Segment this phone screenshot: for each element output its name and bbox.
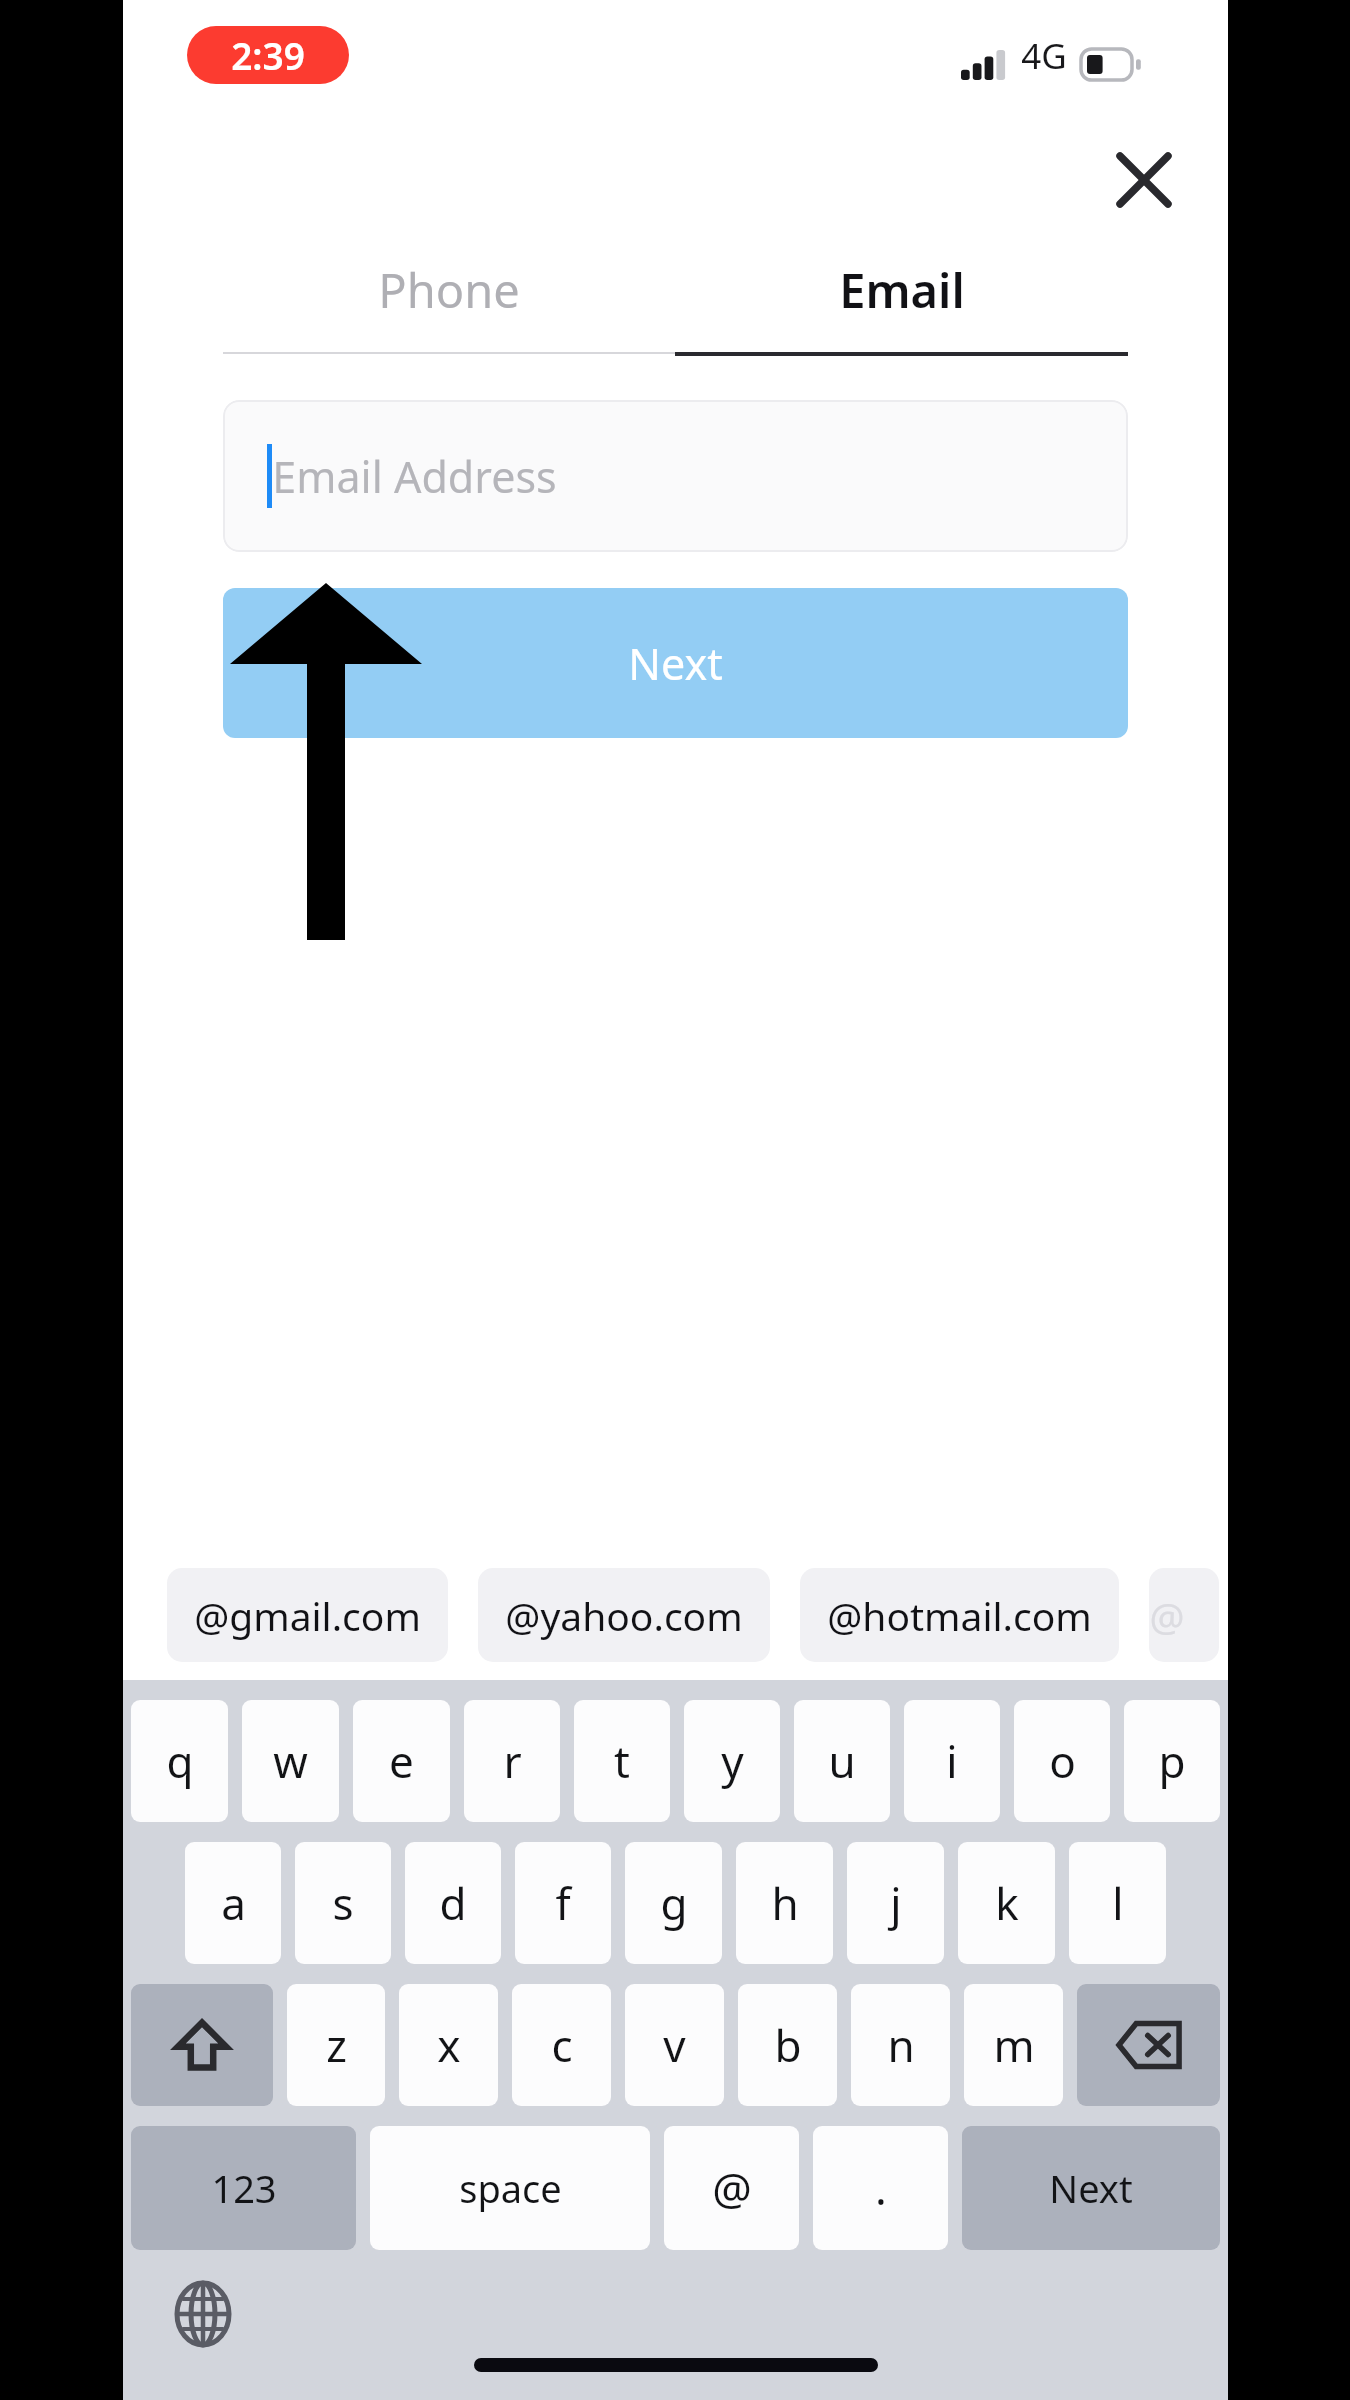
button[interactable]: Email Address [223,400,1128,552]
staticText: u [828,1731,856,1791]
staticText: q [166,1731,194,1791]
staticText: @ [712,2158,752,2218]
button[interactable]: a [185,1842,281,1964]
button[interactable]: o [1014,1700,1110,1822]
button[interactable]: @yahoo.com [478,1568,770,1662]
staticText: @gmail.com [194,1589,421,1642]
staticText: . [875,2158,887,2218]
button[interactable]: Close [1100,136,1188,224]
button[interactable]: g [625,1842,722,1964]
button[interactable]: Backspace [1077,1984,1220,2106]
staticText: w [273,1731,308,1791]
staticText: m [993,2015,1035,2075]
button[interactable]: . [813,2126,948,2250]
button[interactable]: y [684,1700,780,1822]
button[interactable]: m [964,1984,1063,2106]
button[interactable]: p [1124,1700,1220,1822]
button[interactable]: j [847,1842,944,1964]
button[interactable]: e [353,1700,450,1822]
staticText: y [721,1731,744,1791]
staticText: s [332,1873,354,1933]
staticText: Email Address [272,447,557,506]
staticText: x [437,2015,461,2075]
button[interactable]: 123 [131,2126,356,2250]
button[interactable]: q [131,1700,228,1822]
staticText: 4G [1021,32,1067,80]
staticText: @yahoo.com [505,1589,743,1642]
button[interactable]: Next [962,2126,1220,2250]
staticText: b [774,2015,802,2075]
button[interactable]: b [738,1984,837,2106]
button[interactable]: u [794,1700,890,1822]
staticText: c [551,2015,573,2075]
button[interactable]: d [405,1842,501,1964]
button[interactable]: f [515,1842,611,1964]
staticText: a [221,1873,246,1933]
button[interactable]: z [287,1984,385,2106]
staticText: g [660,1873,688,1933]
staticText: n [887,2015,915,2075]
button[interactable]: c [512,1984,611,2106]
button[interactable]: Shift [131,1984,273,2106]
staticText: 123 [211,2162,277,2214]
staticText: v [663,2015,686,2075]
button[interactable]: @gmail.com [167,1568,448,1662]
staticText: Next [1049,2162,1133,2214]
staticText: @hotmail.com [827,1589,1092,1642]
button[interactable]: l [1069,1842,1166,1964]
button[interactable]: k [958,1842,1055,1964]
staticText: 2:39 [231,30,305,80]
staticText: e [389,1731,414,1791]
button[interactable]: @hotmail.com [800,1568,1119,1662]
button[interactable]: @ [1149,1568,1219,1662]
staticText: r [503,1731,522,1791]
staticText: p [1158,1731,1186,1791]
staticText: Next [628,634,723,693]
button[interactable]: Phone [223,244,675,354]
staticText: Email [839,258,965,322]
button[interactable]: n [851,1984,950,2106]
button[interactable]: r [464,1700,560,1822]
staticText: space [459,2162,562,2214]
staticText: f [555,1873,571,1933]
staticText: i [946,1731,958,1791]
staticText: j [890,1873,902,1933]
button[interactable]: s [295,1842,391,1964]
staticText: Phone [378,258,520,322]
button[interactable]: x [399,1984,498,2106]
button[interactable]: t [574,1700,670,1822]
button[interactable]: space [370,2126,650,2250]
button[interactable]: Change keyboard [161,2272,245,2356]
button[interactable]: i [904,1700,1000,1822]
button[interactable]: Next [223,588,1128,738]
button[interactable]: @ [664,2126,799,2250]
staticText: t [614,1731,630,1791]
button[interactable]: h [736,1842,833,1964]
staticText: o [1049,1731,1076,1791]
staticText: h [771,1873,799,1933]
button[interactable]: w [242,1700,339,1822]
staticText: @ [1149,1589,1185,1642]
staticText: z [326,2015,347,2075]
button[interactable]: Email [675,244,1128,356]
staticText: l [1112,1873,1124,1933]
button[interactable]: v [625,1984,724,2106]
staticText: d [439,1873,467,1933]
staticText: k [995,1873,1019,1933]
